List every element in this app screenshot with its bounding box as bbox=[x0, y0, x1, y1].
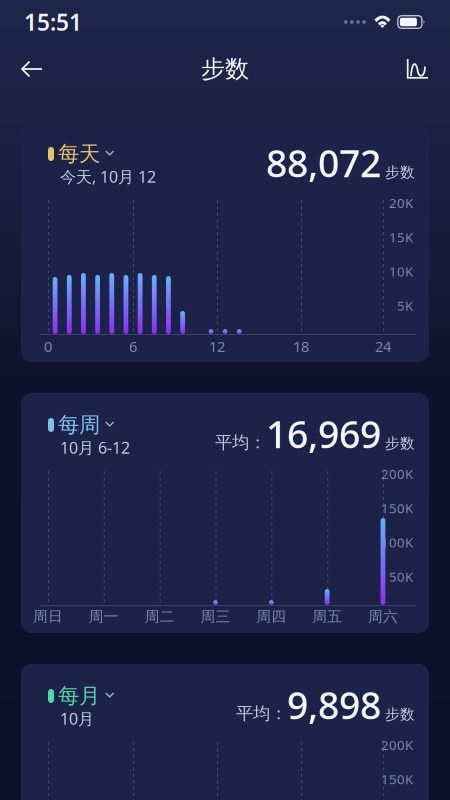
staticText: 150K bbox=[381, 770, 413, 788]
staticText: 每天 bbox=[58, 141, 100, 167]
staticText: 今天, 10月 12 bbox=[60, 166, 156, 187]
staticText: 15K bbox=[389, 228, 413, 246]
staticText: 每周 bbox=[58, 412, 100, 438]
staticText: 0 bbox=[44, 336, 52, 356]
staticText: 周五 bbox=[312, 607, 342, 625]
staticText: 周四 bbox=[256, 607, 286, 625]
staticText: 周一 bbox=[89, 607, 119, 625]
button[interactable]: 返回 bbox=[6, 46, 58, 92]
button[interactable]: 每周 bbox=[48, 414, 114, 436]
staticText: 10K bbox=[389, 262, 413, 280]
staticText: 周二 bbox=[145, 607, 175, 625]
staticText: 15:51 bbox=[24, 7, 82, 37]
staticText: 20K bbox=[389, 194, 413, 212]
button[interactable]: 每天 bbox=[48, 143, 114, 165]
staticText: 5K bbox=[397, 297, 413, 314]
staticText: 步数 bbox=[201, 54, 249, 84]
staticText: 50K bbox=[389, 568, 413, 585]
staticText: 周六 bbox=[368, 607, 398, 625]
staticText: 平均： bbox=[215, 432, 266, 453]
staticText: 200K bbox=[381, 736, 413, 754]
button[interactable]: 统计图表 bbox=[392, 46, 444, 92]
staticText: 周三 bbox=[200, 607, 230, 625]
staticText: 步数 bbox=[385, 163, 415, 181]
staticText: 10月 bbox=[60, 708, 94, 729]
staticText: 步数 bbox=[385, 705, 415, 723]
staticText: 200K bbox=[381, 465, 413, 483]
staticText: 18 bbox=[293, 336, 309, 356]
staticText: 88,072 bbox=[266, 138, 381, 188]
staticText: 9,898 bbox=[287, 680, 381, 730]
staticText: 10月 6-12 bbox=[60, 437, 130, 458]
staticText: 150K bbox=[381, 499, 413, 517]
staticText: 12 bbox=[209, 336, 225, 356]
staticText: 每月 bbox=[58, 683, 100, 709]
staticText: 步数 bbox=[385, 434, 415, 452]
staticText: 16,969 bbox=[266, 409, 381, 459]
button[interactable]: 每月 bbox=[48, 685, 114, 707]
staticText: 周日 bbox=[33, 607, 63, 625]
staticText: 6 bbox=[129, 336, 137, 356]
staticText: 100K bbox=[381, 533, 413, 551]
staticText: 平均： bbox=[236, 703, 287, 724]
staticText: 24 bbox=[375, 336, 391, 356]
